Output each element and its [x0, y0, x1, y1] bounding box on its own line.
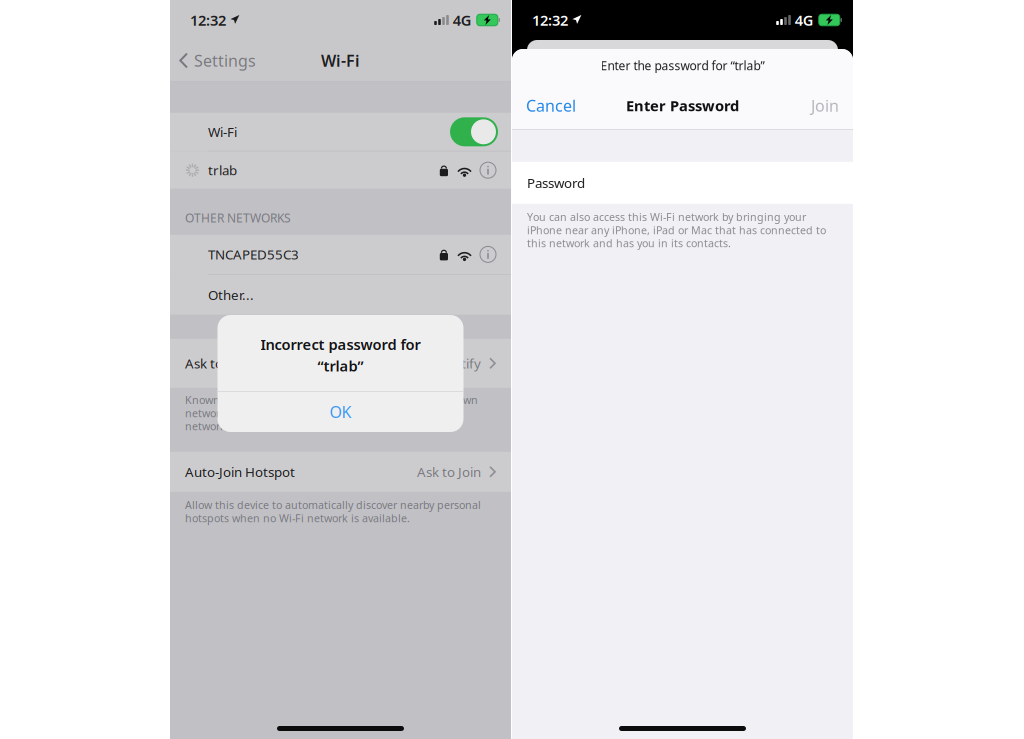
staticText: Known networks will be joined automatica…: [185, 393, 478, 433]
staticText: Ask to Join: [417, 463, 481, 481]
staticText: Other...: [208, 286, 254, 304]
staticText: Notify: [443, 354, 481, 372]
staticText: Ask to Join Networks: [185, 354, 312, 372]
staticText: Enter Password: [626, 96, 739, 115]
staticText: Allow this device to automatically disco…: [185, 498, 481, 525]
staticText: You can also access this Wi-Fi network b…: [527, 210, 826, 250]
staticText: Auto-Join Hotspot: [185, 463, 295, 481]
staticText: Cancel: [526, 95, 576, 116]
staticText: Password: [527, 174, 585, 192]
button[interactable]: Join: [797, 87, 853, 124]
staticText: Join: [811, 95, 839, 116]
staticText: 4G: [453, 10, 472, 30]
button[interactable]: OK: [217, 392, 463, 432]
button[interactable]: Settings: [170, 45, 256, 76]
button[interactable]: More info: [480, 162, 496, 178]
button[interactable]: Cancel: [512, 87, 590, 124]
staticText: Incorrect password for: [260, 335, 420, 354]
staticText: 4G: [795, 10, 814, 30]
staticText: trlab: [208, 161, 237, 179]
staticText: OTHER NETWORKS: [185, 210, 291, 226]
staticText: “trlab”: [317, 356, 363, 376]
staticText: Wi-Fi: [321, 50, 360, 71]
staticText: OK: [329, 401, 351, 422]
staticText: Settings: [194, 50, 256, 71]
button[interactable]: More info: [480, 246, 496, 262]
staticText: 12:32: [532, 10, 568, 30]
staticText: Enter the password for “trlab”: [600, 57, 764, 73]
staticText: TNCAPED55C3: [208, 245, 299, 263]
staticText: Wi-Fi: [208, 123, 237, 141]
staticText: 12:32: [190, 10, 226, 30]
